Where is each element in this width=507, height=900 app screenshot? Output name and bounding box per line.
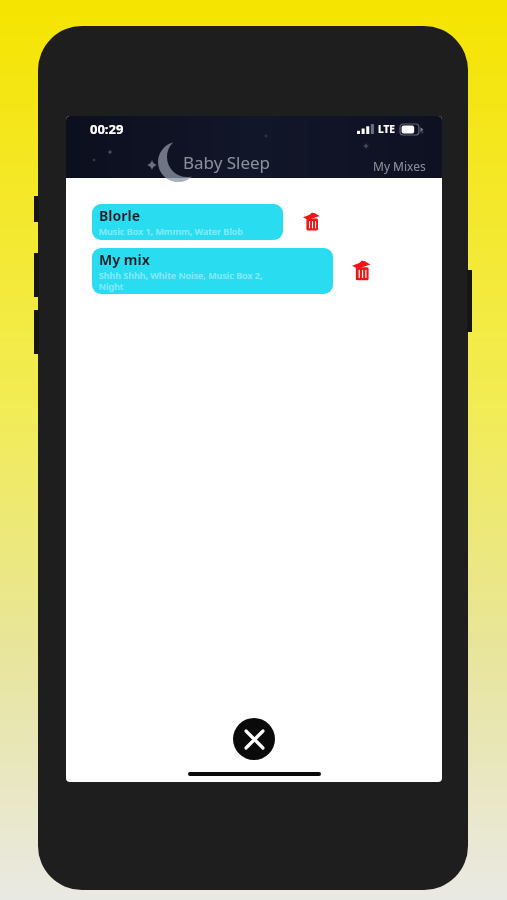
button[interactable]: Close — [233, 718, 275, 760]
staticText: Blorle — [99, 206, 141, 225]
button[interactable]: My Mixes — [371, 158, 428, 174]
staticText: Baby Sleep — [82, 151, 371, 174]
button[interactable]: Delete mix — [347, 256, 377, 286]
button[interactable]: Delete mix — [298, 208, 326, 236]
staticText: Music Box 1, Mmmm, Water Blob — [99, 225, 244, 237]
staticText: Shhh Shhh, White Noise, Music Box 2, Nig… — [99, 269, 263, 292]
staticText: My mix — [99, 250, 150, 269]
button[interactable]: My mix — [92, 248, 333, 294]
staticText: 00:29 — [90, 120, 124, 138]
staticText: LTE — [378, 122, 395, 136]
button[interactable]: Blorle — [92, 204, 283, 240]
